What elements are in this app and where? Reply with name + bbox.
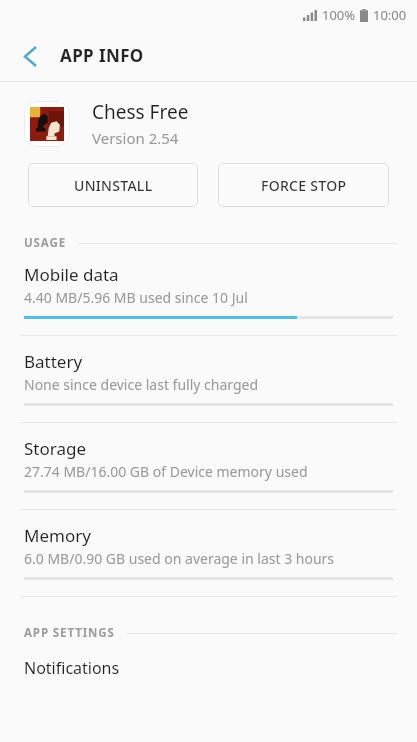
staticText: 10:00: [373, 6, 407, 24]
button[interactable]: Battery: [0, 350, 417, 437]
staticText: APP INFO: [60, 44, 144, 67]
staticText: APP SETTINGS: [24, 625, 115, 641]
button[interactable]: Memory: [0, 524, 417, 611]
staticText: Memory: [24, 524, 91, 547]
staticText: USAGE: [24, 235, 67, 251]
button[interactable]: UNINSTALL: [28, 163, 198, 207]
button[interactable]: Notifications: [0, 655, 417, 681]
staticText: 100%: [322, 6, 356, 24]
staticText: Version 2.54: [92, 128, 179, 148]
staticText: Storage: [24, 437, 87, 460]
staticText: 27.74 MB/16.00 GB of Device memory used: [24, 462, 308, 481]
staticText: Mobile data: [24, 263, 119, 286]
staticText: 4.40 MB/5.96 MB used since 10 Jul: [24, 288, 248, 307]
staticText: FORCE STOP: [261, 176, 347, 195]
staticText: None since device last fully charged: [24, 375, 259, 394]
button[interactable]: Back: [8, 34, 52, 78]
staticText: Battery: [24, 350, 83, 373]
button[interactable]: FORCE STOP: [218, 163, 389, 207]
staticText: UNINSTALL: [74, 176, 153, 195]
button[interactable]: Mobile data: [0, 263, 417, 350]
button[interactable]: Storage: [0, 437, 417, 524]
staticText: 6.0 MB/0.90 GB used on average in last 3…: [24, 549, 335, 568]
staticText: Notifications: [24, 657, 120, 679]
staticText: Chess Free: [92, 99, 189, 125]
